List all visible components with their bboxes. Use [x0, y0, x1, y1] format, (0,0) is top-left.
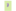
button[interactable]	[7, 3, 9, 7]
